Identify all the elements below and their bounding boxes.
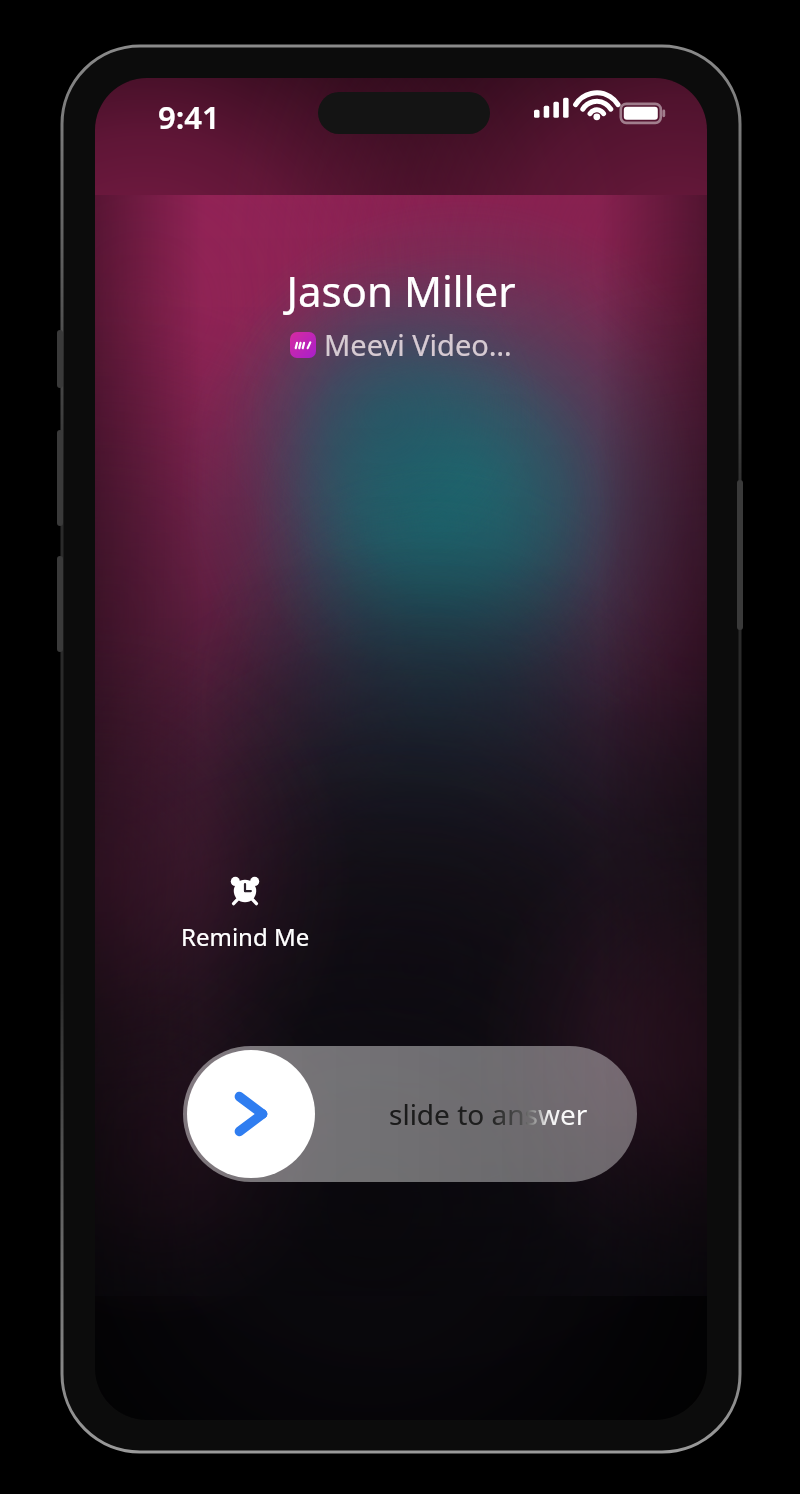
button[interactable]: Remind Me bbox=[180, 872, 310, 953]
staticText: slide to answer bbox=[389, 1095, 588, 1133]
staticText: Remind Me bbox=[181, 920, 310, 953]
staticText: Meevi Video… bbox=[324, 325, 512, 364]
staticText: Jason Miller bbox=[286, 262, 516, 319]
staticText: 9:41 bbox=[158, 96, 220, 138]
button[interactable]: Answer call bbox=[187, 1050, 315, 1178]
button[interactable]: slide to answer bbox=[183, 1046, 637, 1182]
